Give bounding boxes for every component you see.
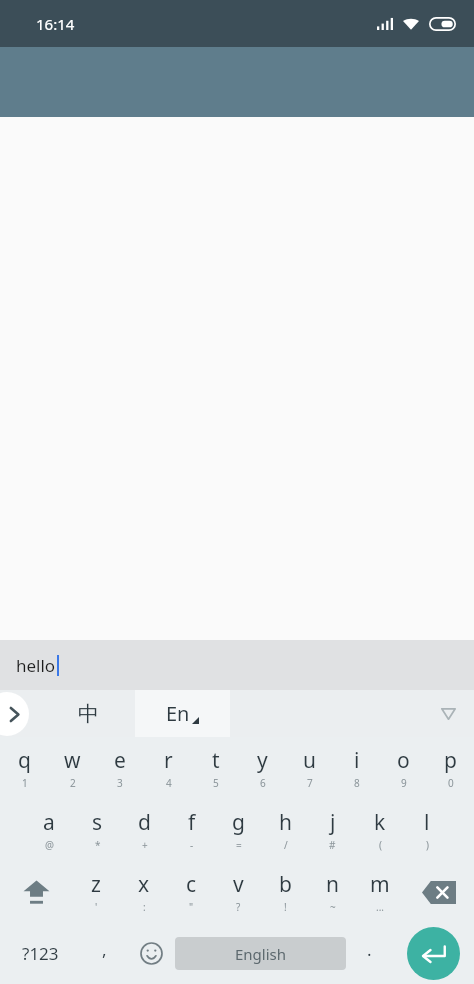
button[interactable]: g [215, 799, 262, 861]
button[interactable]: l [403, 799, 450, 861]
button[interactable]: . [346, 923, 393, 984]
staticText: t [212, 746, 220, 775]
staticText: # [329, 838, 336, 852]
button[interactable]: , [81, 923, 128, 984]
staticText: 6 [260, 776, 266, 790]
button[interactable]: t [192, 737, 239, 799]
staticText: . [367, 938, 372, 961]
staticText: " [189, 900, 194, 914]
button[interactable]: h [262, 799, 309, 861]
button[interactable]: v [215, 861, 262, 923]
staticText: 中 [78, 701, 99, 727]
staticText: h [279, 808, 292, 837]
staticText: : [143, 900, 146, 914]
staticText: x [138, 870, 150, 899]
button[interactable]: s [73, 799, 121, 861]
staticText: ... [376, 900, 385, 914]
staticText: o [397, 746, 410, 775]
staticText: s [92, 808, 103, 837]
staticText: b [279, 870, 292, 899]
button[interactable]: Backspace [403, 861, 474, 923]
button[interactable]: e [96, 737, 144, 799]
staticText: ~ [330, 900, 336, 914]
staticText: - [190, 838, 194, 852]
staticText: g [232, 808, 245, 837]
staticText: 16:14 [36, 14, 75, 34]
staticText: y [257, 746, 268, 775]
button[interactable]: Shift [0, 861, 72, 923]
button[interactable]: u [286, 737, 333, 799]
staticText: a [43, 808, 55, 837]
button[interactable]: 中 [62, 690, 114, 737]
staticText: f [188, 808, 196, 837]
staticText: r [164, 746, 173, 775]
button[interactable]: k [356, 799, 403, 861]
staticText: 8 [354, 776, 360, 790]
button[interactable]: c [168, 861, 215, 923]
staticText: @ [45, 838, 54, 852]
staticText: ? [236, 900, 241, 914]
staticText: ( [379, 838, 382, 852]
staticText: u [303, 746, 316, 775]
staticText: ) [426, 838, 429, 852]
button[interactable]: Expand toolbar [0, 692, 29, 736]
staticText: 0 [448, 776, 454, 790]
staticText: + [142, 838, 148, 852]
staticText: = [236, 838, 242, 852]
staticText: En [166, 700, 190, 727]
button[interactable]: o [380, 737, 427, 799]
button[interactable]: w [48, 737, 96, 799]
staticText: 1 [22, 776, 28, 790]
button[interactable]: n [309, 861, 356, 923]
button[interactable]: a [25, 799, 73, 861]
button[interactable]: ?123 [0, 923, 81, 984]
staticText: i [354, 746, 360, 775]
button[interactable]: p [427, 737, 474, 799]
staticText: 4 [166, 776, 172, 790]
button[interactable]: y [239, 737, 286, 799]
staticText: , [102, 938, 107, 961]
button[interactable]: z [72, 861, 120, 923]
staticText: c [186, 870, 197, 899]
staticText: 9 [401, 776, 407, 790]
button[interactable]: d [121, 799, 168, 861]
staticText: j [330, 808, 336, 837]
button[interactable]: b [262, 861, 309, 923]
button[interactable]: Emoji [128, 923, 175, 984]
button[interactable]: En [135, 690, 230, 737]
button[interactable]: x [120, 861, 168, 923]
staticText: English [235, 944, 287, 964]
staticText: n [326, 870, 339, 899]
staticText: v [233, 870, 244, 899]
button[interactable]: r [144, 737, 192, 799]
staticText: z [91, 870, 101, 899]
button[interactable]: f [168, 799, 215, 861]
staticText: hello [16, 654, 56, 677]
staticText: ' [95, 900, 98, 914]
button[interactable]: m [356, 861, 403, 923]
button[interactable]: j [309, 799, 356, 861]
button[interactable]: Enter [407, 927, 460, 980]
staticText: ! [284, 900, 287, 914]
staticText: e [114, 746, 126, 775]
button[interactable]: English [175, 937, 346, 970]
button[interactable]: q [0, 737, 48, 799]
staticText: k [374, 808, 386, 837]
staticText: / [284, 838, 288, 852]
staticText: 3 [117, 776, 123, 790]
staticText: m [370, 870, 390, 899]
button[interactable]: i [333, 737, 380, 799]
staticText: * [95, 838, 101, 852]
staticText: 2 [70, 776, 76, 790]
staticText: p [444, 746, 457, 775]
staticText: w [64, 746, 81, 775]
staticText: d [138, 808, 151, 837]
staticText: q [18, 746, 31, 775]
staticText: ?123 [22, 942, 59, 965]
staticText: 5 [213, 776, 219, 790]
staticText: l [424, 808, 430, 837]
staticText: 7 [307, 776, 313, 790]
button[interactable]: Hide keyboard [422, 690, 474, 737]
